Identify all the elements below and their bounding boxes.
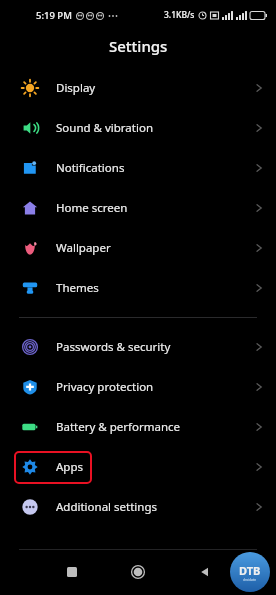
button[interactable]: Privacy protection (0, 367, 276, 407)
button[interactable]: Home (121, 555, 155, 589)
staticText: Wallpaper (56, 240, 111, 256)
staticText: Sound & vibration (56, 120, 153, 136)
staticText: Home screen (56, 200, 128, 216)
staticText: Passwords & security (56, 339, 171, 355)
button[interactable]: Wallpaper (0, 228, 276, 268)
staticText: Notifications (56, 160, 125, 176)
button[interactable]: Passwords & security (0, 327, 276, 367)
button[interactable]: Additional settings (0, 487, 276, 527)
staticText: Additional settings (56, 499, 158, 515)
staticText: Privacy protection (56, 379, 154, 395)
button[interactable]: Apps (0, 447, 276, 487)
staticText: Themes (56, 280, 99, 296)
button[interactable]: Home screen (0, 188, 276, 228)
button[interactable]: Recents (55, 555, 89, 589)
staticText: 5:19 PM (36, 9, 72, 22)
staticText: Apps (56, 459, 84, 475)
button[interactable]: Notifications (0, 148, 276, 188)
staticText: DTB (239, 563, 261, 578)
staticText: 3.1KB/s (164, 9, 195, 21)
button[interactable]: Themes (0, 268, 276, 308)
staticText: Settings (109, 36, 168, 56)
button[interactable]: Display (0, 68, 276, 108)
button[interactable]: Back (188, 555, 222, 589)
staticText: Display (56, 80, 96, 96)
staticText: droidwin (243, 578, 257, 582)
button[interactable]: Battery & performance (0, 407, 276, 447)
staticText: Battery & performance (56, 419, 181, 435)
button[interactable]: Sound & vibration (0, 108, 276, 148)
